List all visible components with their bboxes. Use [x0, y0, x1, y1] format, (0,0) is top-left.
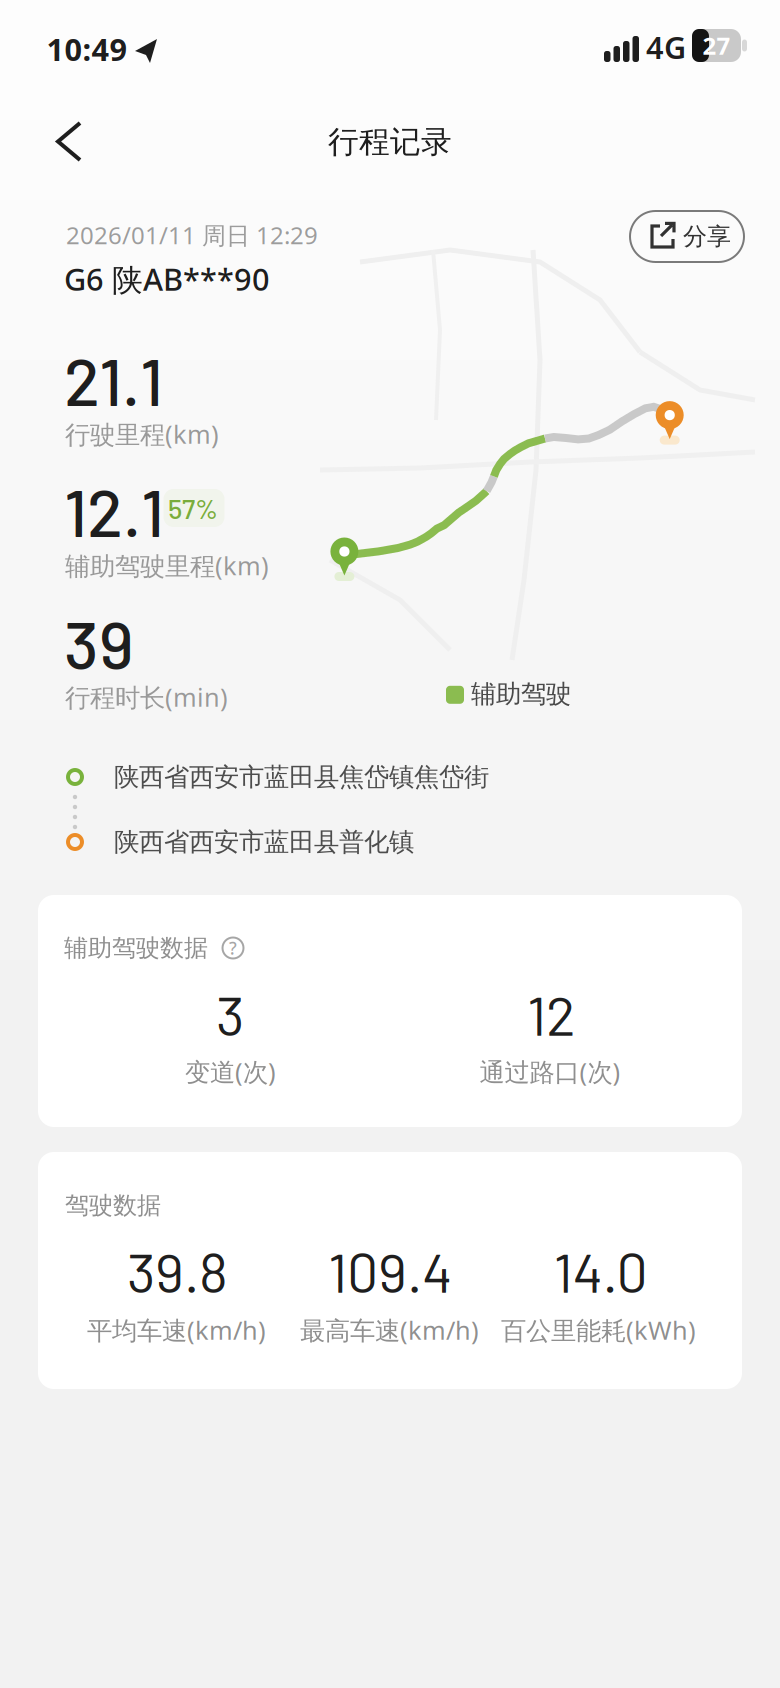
staticText: 21.1: [64, 340, 163, 419]
staticText: 14.0: [553, 1237, 647, 1304]
staticText: 12: [527, 980, 576, 1047]
staticText: ?: [229, 936, 237, 959]
button[interactable]: 分享: [630, 211, 744, 262]
staticText: 10:49: [46, 29, 127, 69]
staticText: 辅助驾驶: [471, 678, 571, 709]
staticText: 驾驶数据: [65, 1191, 161, 1220]
button[interactable]: ?: [219, 934, 247, 962]
staticText: 行驶里程(km): [65, 417, 219, 451]
staticText: 27: [702, 30, 730, 61]
staticText: 109.4: [328, 1237, 452, 1304]
staticText: 12.1: [64, 471, 164, 550]
staticText: 39: [64, 603, 134, 682]
staticText: 57%: [168, 492, 218, 524]
staticText: 4G: [646, 27, 686, 67]
staticText: 辅助驾驶里程(km): [65, 549, 269, 582]
staticText: 变道(次): [185, 1055, 276, 1088]
button[interactable]: [49, 119, 89, 164]
staticText: 3: [216, 980, 244, 1047]
staticText: 2026/01/11 周日 12:29: [66, 219, 318, 251]
staticText: 行程时长(min): [65, 680, 228, 714]
staticText: 行程记录: [328, 123, 452, 161]
staticText: 分享: [683, 222, 731, 251]
staticText: 百公里能耗(kWh): [501, 1313, 696, 1347]
staticText: 通过路口(次): [479, 1055, 620, 1088]
staticText: G6 陕AB***90: [64, 259, 270, 299]
staticText: 平均车速(km/h): [87, 1313, 266, 1347]
staticText: 陕西省西安市蓝田县普化镇: [114, 826, 414, 857]
staticText: 陕西省西安市蓝田县焦岱镇焦岱街: [114, 761, 489, 792]
staticText: 39.8: [127, 1237, 228, 1304]
staticText: 最高车速(km/h): [300, 1313, 479, 1347]
staticText: 辅助驾驶数据: [64, 933, 208, 963]
